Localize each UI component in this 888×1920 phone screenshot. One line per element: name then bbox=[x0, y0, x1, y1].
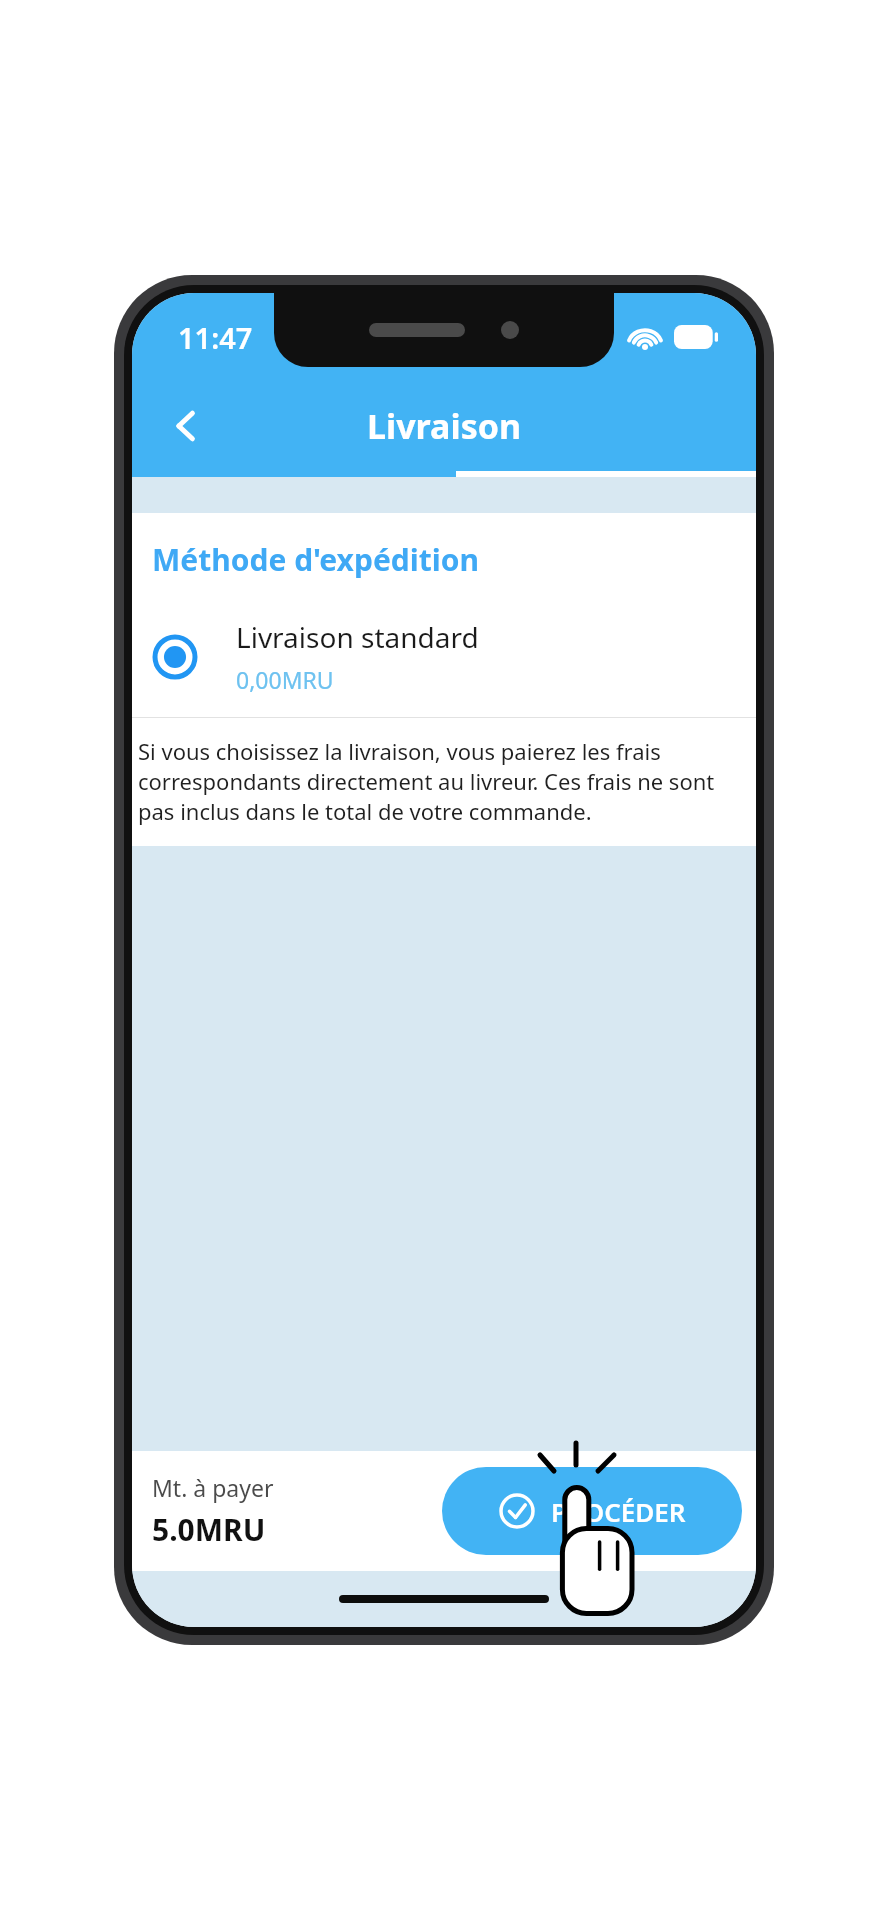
staticText: 11:47 bbox=[178, 318, 253, 357]
staticText: Si vous choisissez la livraison, vous pa… bbox=[138, 736, 746, 826]
staticText: 0,00MRU bbox=[236, 664, 334, 695]
staticText: Méthode d'expédition bbox=[152, 539, 479, 580]
button[interactable]: PROCÉDER bbox=[442, 1467, 742, 1555]
button[interactable]: Livraison standard bbox=[132, 610, 756, 717]
staticText: 5.0MRU bbox=[152, 1509, 266, 1550]
staticText: PROCÉDER bbox=[551, 1494, 686, 1529]
staticText: Mt. à payer bbox=[152, 1472, 274, 1503]
staticText: Livraison bbox=[367, 403, 522, 449]
button[interactable]: Back bbox=[150, 390, 222, 462]
staticText: Livraison standard bbox=[236, 618, 479, 656]
